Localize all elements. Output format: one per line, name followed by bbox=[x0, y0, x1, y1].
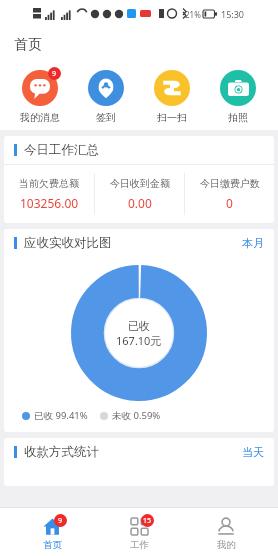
staticText: 我的消息 bbox=[20, 111, 60, 124]
staticText: 我的 bbox=[217, 539, 236, 551]
staticText: 9 bbox=[58, 516, 63, 526]
button[interactable]: 今日收到金额 bbox=[95, 165, 184, 223]
staticText: 扫一扫 bbox=[157, 111, 187, 124]
staticText: 今日缴费户数 bbox=[200, 177, 260, 190]
button[interactable]: 签到 bbox=[80, 66, 132, 124]
button[interactable]: 拍照 bbox=[212, 66, 264, 124]
staticText: 167.10元 bbox=[116, 333, 162, 348]
staticText: 15:30 bbox=[221, 8, 245, 20]
button[interactable]: 今日缴费户数 bbox=[185, 165, 274, 223]
staticText: 今日收到金额 bbox=[110, 177, 170, 190]
staticText: 21% bbox=[185, 9, 201, 20]
staticText: 9 bbox=[52, 69, 57, 79]
staticText: 签到 bbox=[96, 111, 116, 124]
staticText: 首页 bbox=[14, 36, 42, 54]
staticText: 收款方式统计 bbox=[24, 444, 99, 460]
button[interactable]: 9 bbox=[14, 66, 66, 124]
staticText: 工作 bbox=[130, 539, 149, 551]
staticText: 应收实收对比图 bbox=[24, 235, 112, 251]
button[interactable]: 我的 bbox=[191, 508, 261, 556]
staticText: 已收 bbox=[128, 319, 150, 333]
button[interactable]: 扫一扫 bbox=[146, 66, 198, 124]
button[interactable]: 当天 bbox=[242, 445, 264, 459]
staticText: 首页 bbox=[43, 539, 62, 551]
staticText: 未收 0.59% bbox=[112, 409, 161, 422]
staticText: 15 bbox=[143, 516, 152, 526]
staticText: 0.00 bbox=[128, 195, 152, 211]
button[interactable]: 当前欠费总额 bbox=[4, 165, 94, 223]
button[interactable]: 本月 bbox=[242, 236, 264, 250]
staticText: 拍照 bbox=[228, 111, 248, 124]
staticText: 当前欠费总额 bbox=[19, 177, 79, 190]
button[interactable]: 9 bbox=[17, 508, 87, 556]
staticText: 已收 99.41% bbox=[34, 409, 88, 422]
staticText: 0 bbox=[226, 195, 233, 211]
button[interactable]: 15 bbox=[104, 508, 174, 556]
staticText: 103256.00 bbox=[20, 195, 79, 211]
staticText: 今日工作汇总 bbox=[24, 142, 99, 158]
